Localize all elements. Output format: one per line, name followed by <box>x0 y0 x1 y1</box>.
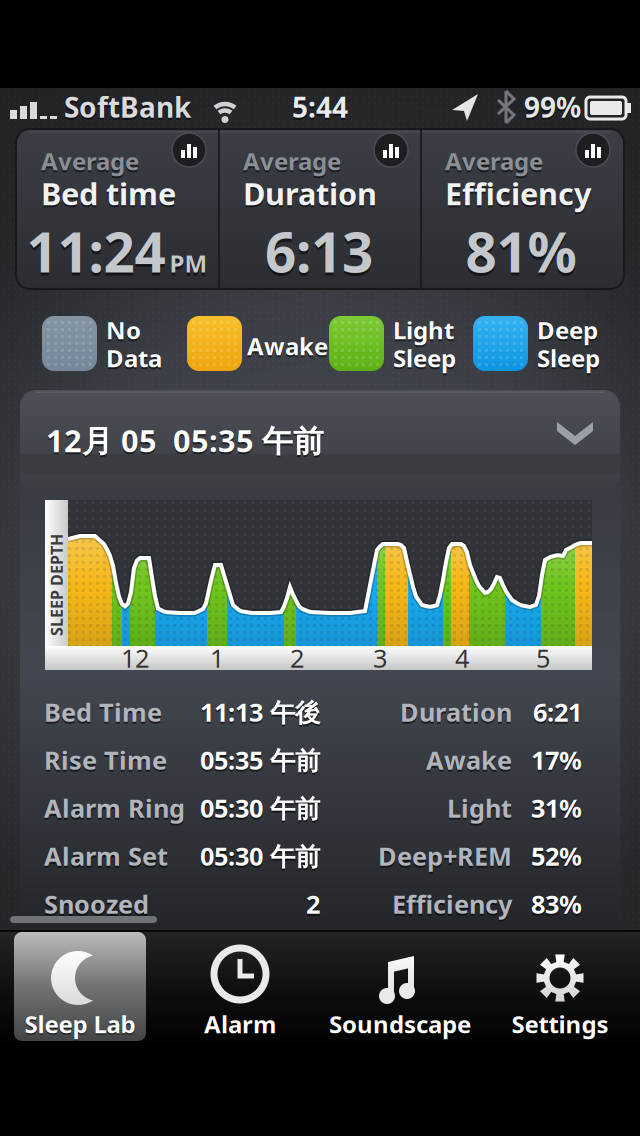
staticText: 05:30 午前 <box>200 793 320 827</box>
staticText: Light <box>447 793 512 827</box>
staticText: 81% <box>465 218 576 291</box>
staticText: Data <box>106 344 162 376</box>
staticText: Data <box>106 342 162 374</box>
staticText: Efficiency <box>392 887 512 921</box>
staticText: Bed time <box>41 175 176 216</box>
button[interactable]: Alarm <box>160 930 320 1048</box>
staticText: Sleep <box>393 342 456 374</box>
staticText: Deep+REM <box>378 839 512 873</box>
staticText: 11:24 <box>26 218 165 291</box>
staticText: Bed Time <box>44 695 162 729</box>
staticText: Awake <box>247 330 328 362</box>
button[interactable]: Settings <box>480 930 640 1048</box>
staticText: Deep <box>537 316 598 348</box>
staticText: Settings <box>511 1009 608 1041</box>
button[interactable]: Show Bed time chart <box>172 133 206 167</box>
staticText: Light <box>393 316 454 348</box>
staticText: Alarm <box>204 1009 276 1041</box>
staticText: Soundscape <box>329 1009 471 1041</box>
staticText: 4 <box>455 641 469 675</box>
button[interactable]: Collapse day details <box>20 390 620 474</box>
staticText: 99% <box>524 88 581 126</box>
staticText: 17% <box>531 745 582 779</box>
staticText: 2 <box>306 889 320 923</box>
staticText: Sleep <box>537 344 600 376</box>
staticText: 31% <box>531 793 582 827</box>
staticText: Average <box>445 147 543 179</box>
staticText: PM <box>169 247 207 279</box>
staticText: 81% <box>465 215 576 288</box>
staticText: 5:44 <box>292 88 348 126</box>
staticText: Rise Time <box>44 743 167 777</box>
staticText: Average <box>41 145 139 177</box>
staticText: Average <box>445 145 543 177</box>
staticText: 99% <box>524 90 581 128</box>
staticText: 6:21 <box>533 697 582 731</box>
staticText: SoftBank <box>64 88 191 126</box>
staticText: Awake <box>426 743 512 777</box>
staticText: 2 <box>306 887 320 921</box>
staticText: 05:35 午前 <box>200 743 320 777</box>
staticText: Light <box>393 314 454 346</box>
staticText: 5 <box>536 641 550 675</box>
staticText: 1 <box>210 641 224 675</box>
staticText: Sleep <box>537 342 600 374</box>
staticText: Average <box>243 147 341 179</box>
staticText: No <box>106 314 141 346</box>
staticText: 6:21 <box>533 695 582 729</box>
staticText: 6:13 <box>265 218 373 291</box>
staticText: SoftBank <box>64 90 191 128</box>
staticText: Snoozed <box>44 887 149 921</box>
staticText: 6:13 <box>265 215 373 288</box>
staticText: Rise Time <box>44 745 167 779</box>
staticText: Average <box>41 147 139 179</box>
staticText: Efficiency <box>392 889 512 923</box>
button[interactable]: Sleep Lab <box>0 930 160 1048</box>
staticText: 12月 05 05:35 午前 <box>46 422 324 463</box>
staticText: No <box>106 316 141 348</box>
staticText: Alarm Ring <box>44 793 185 827</box>
staticText: Sleep Lab <box>24 1009 135 1041</box>
staticText: 83% <box>531 889 582 923</box>
staticText: Settings <box>511 1008 608 1040</box>
staticText: 83% <box>531 887 582 921</box>
staticText: Duration <box>243 175 377 216</box>
staticText: 31% <box>531 791 582 825</box>
staticText: Alarm <box>204 1008 276 1040</box>
staticText: Duration <box>400 695 512 729</box>
staticText: 3 <box>373 641 387 675</box>
staticText: 12月 05 05:35 午前 <box>46 420 324 461</box>
staticText: 17% <box>531 743 582 777</box>
staticText: Alarm Set <box>44 839 168 873</box>
staticText: 5:44 <box>292 90 348 128</box>
staticText: 11:13 午後 <box>200 695 320 729</box>
staticText: 11:13 午後 <box>200 697 320 731</box>
button[interactable]: Show Efficiency chart <box>576 133 610 167</box>
staticText: Bed Time <box>44 697 162 731</box>
staticText: Deep <box>537 314 598 346</box>
staticText: Duration <box>243 173 377 214</box>
staticText: 2 <box>290 641 304 675</box>
staticText: Sleep <box>393 344 456 376</box>
staticText: Light <box>447 791 512 825</box>
staticText: 05:30 午前 <box>200 841 320 875</box>
staticText: Alarm Set <box>44 841 168 875</box>
staticText: 52% <box>531 841 582 875</box>
staticText: Duration <box>400 697 512 731</box>
staticText: Awake <box>426 745 512 779</box>
staticText: Awake <box>247 332 328 364</box>
staticText: Sleep Lab <box>24 1008 135 1040</box>
staticText: Alarm Ring <box>44 791 185 825</box>
staticText: 52% <box>531 839 582 873</box>
staticText: Efficiency <box>445 175 592 216</box>
staticText: 05:30 午前 <box>200 839 320 873</box>
button[interactable]: Show Duration chart <box>374 133 408 167</box>
staticText: 11:24 <box>26 215 165 288</box>
staticText: Snoozed <box>44 889 149 923</box>
button[interactable]: Soundscape <box>320 930 480 1048</box>
staticText: 05:35 午前 <box>200 745 320 779</box>
staticText: Bed time <box>41 173 176 214</box>
staticText: 12 <box>121 641 149 675</box>
staticText: PM <box>169 250 207 282</box>
staticText: Efficiency <box>445 173 592 214</box>
